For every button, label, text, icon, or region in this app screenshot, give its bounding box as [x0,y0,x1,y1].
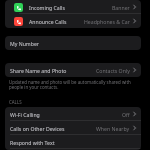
staticText: Announce Calls [29,18,67,25]
button[interactable]: Respond with Text [5,135,141,149]
staticText: Respond with Text [10,139,55,146]
staticText: Incoming Calls [29,4,65,11]
button[interactable]: Calls on Other Devices [5,121,141,135]
staticText: Off [122,111,130,118]
staticText: Share Name and Photo [10,67,67,74]
staticText: When Nearby [96,125,130,132]
staticText: Calls on Other Devices [10,125,65,132]
staticText: My Number [10,40,39,47]
button[interactable]: Wi-Fi Calling [5,107,141,121]
staticText: Banner [112,4,130,11]
staticText: Updated name and photo will be automatic… [9,79,138,91]
button[interactable]: Incoming Calls [5,0,141,14]
staticText: CALLS [9,99,22,105]
button[interactable]: Announce Calls [5,14,141,28]
staticText: Headphones & Car [84,18,130,25]
staticText: Contacts Only [96,67,130,74]
button[interactable]: Share Name and Photo [5,63,141,77]
staticText: Wi-Fi Calling [10,111,40,118]
button[interactable]: My Number [5,36,141,50]
